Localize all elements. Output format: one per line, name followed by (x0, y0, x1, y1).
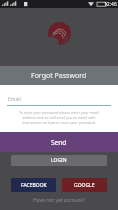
button[interactable]: Send (0, 132, 118, 152)
staticText: GOOGLE (74, 182, 95, 189)
button[interactable]: GOOGLE (62, 178, 107, 192)
button[interactable]: FACEBOOK (11, 178, 56, 192)
staticText: 12:46 (104, 1, 117, 8)
staticText: Email (8, 96, 21, 103)
staticText: Forgot Password (31, 71, 87, 81)
button[interactable]: Have not yet account? (33, 197, 85, 204)
staticText: Send (51, 138, 67, 147)
staticText: FACEBOOK (21, 182, 47, 189)
staticText: To reset your password please enter your… (19, 110, 99, 125)
button[interactable]: LOGIN (11, 155, 107, 166)
staticText: LOGIN (51, 157, 67, 164)
